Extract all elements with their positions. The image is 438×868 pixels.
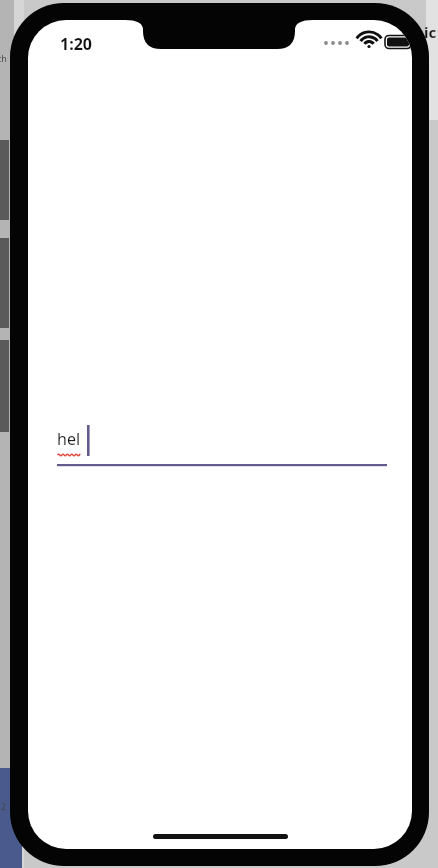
staticText: 2 bbox=[1, 800, 7, 812]
button[interactable]: Text input field bbox=[57, 418, 387, 468]
staticText: hel bbox=[57, 428, 81, 450]
staticText: 1:20 bbox=[60, 33, 92, 55]
staticText: ch bbox=[0, 52, 7, 64]
staticText: ic bbox=[424, 22, 437, 42]
